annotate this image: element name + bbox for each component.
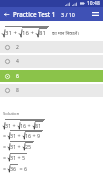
staticText: 25: [25, 143, 32, 150]
staticText: का मान निकालें।: [52, 30, 79, 36]
button[interactable]: Question list: [87, 7, 103, 21]
staticText: Solution: [3, 111, 20, 117]
staticText: 31 +: [10, 132, 23, 139]
button[interactable]: 2: [0, 41, 103, 53]
staticText: 81: [39, 29, 46, 37]
staticText: =: [3, 165, 8, 172]
staticText: 2: [16, 44, 19, 51]
staticText: 16 +: [22, 29, 36, 37]
staticText: 81: [35, 122, 42, 129]
staticText: 31 + 5: [10, 154, 26, 161]
staticText: = 6: [18, 165, 27, 172]
staticText: 4: [16, 58, 19, 65]
staticText: 31 +: [10, 143, 23, 150]
button[interactable]: 4: [0, 55, 103, 68]
staticText: 36: [10, 165, 17, 172]
staticText: 31 +: [5, 122, 18, 129]
staticText: 3 / 10: [61, 11, 75, 18]
staticText: Practice Test 1: [13, 10, 56, 18]
staticText: =: [3, 143, 8, 150]
button[interactable]: Back: [0, 7, 13, 21]
staticText: 16 + 9: [25, 132, 41, 139]
staticText: 8: [16, 87, 19, 94]
button[interactable]: 6: [0, 70, 103, 82]
button[interactable]: 8: [0, 84, 103, 97]
staticText: 10:48: [87, 0, 100, 7]
staticText: 16 +: [20, 122, 33, 129]
staticText: 6: [16, 73, 19, 80]
staticText: =: [3, 154, 8, 161]
staticText: =: [3, 132, 8, 139]
staticText: 31 +: [5, 29, 19, 37]
